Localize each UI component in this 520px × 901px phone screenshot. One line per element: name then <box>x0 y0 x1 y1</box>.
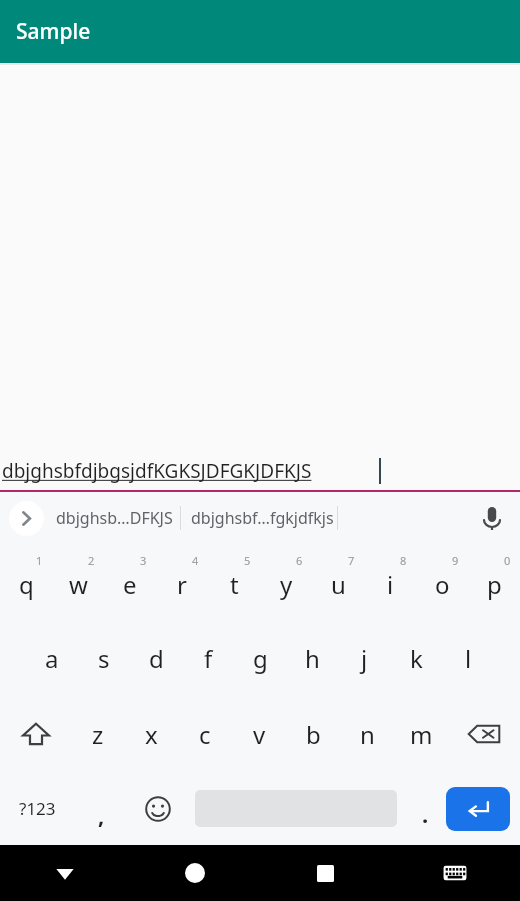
button[interactable]: Hide keyboard <box>0 845 130 901</box>
button[interactable]: f <box>182 620 234 696</box>
staticText: Sample <box>16 17 91 46</box>
button[interactable]: t <box>208 544 260 620</box>
staticText: x <box>145 718 158 751</box>
button[interactable]: g <box>234 620 286 696</box>
staticText: p <box>487 568 502 601</box>
staticText: u <box>331 568 346 601</box>
staticText: y <box>280 568 293 601</box>
staticText: 1 <box>36 553 43 568</box>
staticText: 7 <box>348 553 355 568</box>
staticText: 6 <box>296 553 303 568</box>
button[interactable]: Voice input <box>472 498 512 538</box>
staticText: t <box>230 568 239 601</box>
staticText: z <box>92 718 104 751</box>
staticText: 8 <box>400 553 407 568</box>
staticText: e <box>123 568 137 601</box>
staticText: j <box>361 642 368 675</box>
button[interactable]: s <box>78 620 130 696</box>
staticText: 0 <box>504 553 511 568</box>
staticText: 4 <box>192 553 199 568</box>
staticText: . <box>422 799 429 829</box>
button[interactable]: r <box>156 544 208 620</box>
button[interactable]: Space <box>195 772 397 845</box>
button[interactable]: , <box>75 772 128 845</box>
button[interactable]: k <box>390 620 442 696</box>
staticText: i <box>387 568 394 601</box>
button[interactable]: p <box>468 544 520 620</box>
staticText: dbjghsbfdjbgsjdfKGKSJDFGKJDFKJS <box>2 458 312 484</box>
button[interactable]: dbjghsbfdjbgsjdfKGKSJDFGKJDFKJS <box>0 452 520 490</box>
button[interactable]: d <box>130 620 182 696</box>
button[interactable]: z <box>71 696 124 772</box>
staticText: c <box>199 718 211 751</box>
staticText: n <box>360 718 375 751</box>
staticText: k <box>410 642 423 675</box>
button[interactable]: w <box>52 544 104 620</box>
staticText: d <box>149 642 164 675</box>
button[interactable]: Recents <box>260 845 390 901</box>
button[interactable]: b <box>286 696 340 772</box>
button[interactable]: l <box>442 620 494 696</box>
button[interactable]: Switch keyboard <box>390 845 520 901</box>
button[interactable]: Shift <box>0 696 71 772</box>
button[interactable]: i <box>364 544 416 620</box>
button[interactable]: . <box>404 772 446 845</box>
staticText: f <box>204 642 213 675</box>
staticText: h <box>305 642 320 675</box>
button[interactable]: Enter <box>446 787 510 831</box>
button[interactable]: y <box>260 544 312 620</box>
staticText: 3 <box>140 553 147 568</box>
staticText: , <box>98 800 105 830</box>
staticText: 9 <box>452 553 459 568</box>
button[interactable]: q <box>0 544 52 620</box>
button[interactable]: dbjghsbf…fgkjdfkjs <box>191 507 334 529</box>
staticText: 5 <box>244 553 251 568</box>
button[interactable]: o <box>416 544 468 620</box>
button[interactable]: More suggestions <box>9 501 44 536</box>
staticText: v <box>253 718 266 751</box>
staticText: r <box>177 568 187 601</box>
staticText: b <box>306 718 321 751</box>
button[interactable]: u <box>312 544 364 620</box>
staticText: o <box>435 568 450 601</box>
staticText: l <box>465 642 472 675</box>
staticText: a <box>45 642 59 675</box>
button[interactable]: Backspace <box>448 696 520 772</box>
button[interactable]: x <box>124 696 178 772</box>
button[interactable]: Emoji <box>128 772 188 845</box>
staticText: s <box>98 642 110 675</box>
button[interactable]: n <box>340 696 394 772</box>
staticText: g <box>253 642 268 675</box>
button[interactable]: a <box>26 620 78 696</box>
button[interactable]: e <box>104 544 156 620</box>
staticText: m <box>410 718 433 751</box>
staticText: q <box>19 568 34 601</box>
staticText: ?123 <box>19 797 56 820</box>
button[interactable]: h <box>286 620 338 696</box>
staticText: 2 <box>88 553 95 568</box>
button[interactable]: ?123 <box>0 772 75 845</box>
staticText: w <box>69 568 88 601</box>
button[interactable]: j <box>338 620 390 696</box>
button[interactable]: c <box>178 696 232 772</box>
button[interactable]: v <box>232 696 286 772</box>
button[interactable]: Home <box>130 845 260 901</box>
button[interactable]: dbjghsb…DFKJS <box>56 507 173 529</box>
button[interactable]: m <box>394 696 448 772</box>
